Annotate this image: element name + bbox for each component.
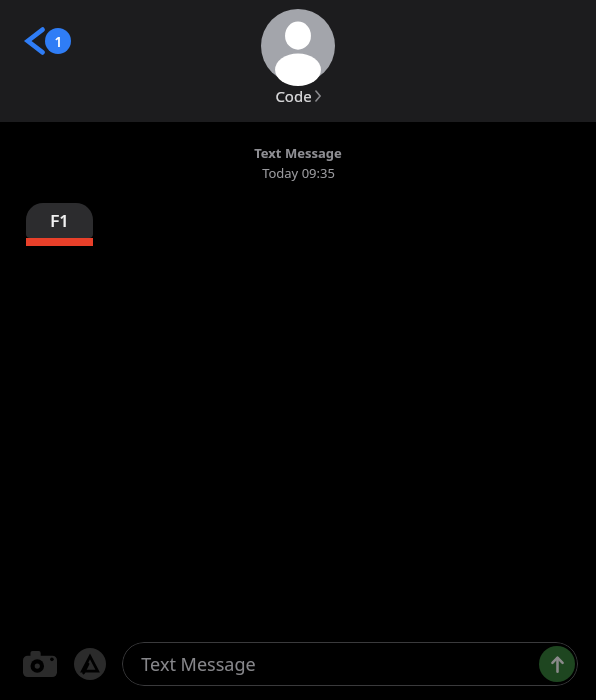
button[interactable]: F1 link preview [26,203,93,246]
button[interactable]: App Store [68,642,112,686]
staticText: Text Message [141,652,256,677]
staticText: Code [275,86,312,106]
button[interactable]: Text Message [122,642,578,686]
button[interactable]: Send [539,646,575,682]
button[interactable]: Code [261,9,335,106]
button[interactable]: Back, 1 unread [22,24,75,58]
staticText: 1 [54,32,63,51]
staticText: F1 [50,209,69,232]
button[interactable]: Camera [18,642,62,686]
staticText: Text Message [254,144,342,162]
staticText: Today 09:35 [262,164,335,182]
